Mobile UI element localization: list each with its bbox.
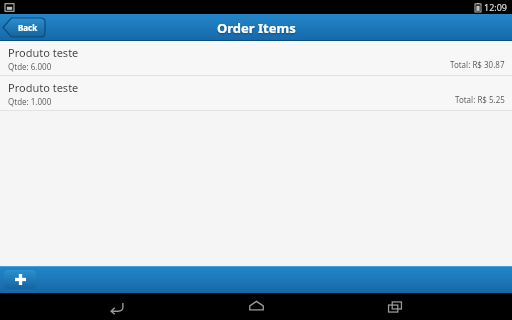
button[interactable]: Add item — [4, 270, 36, 289]
staticText: Qtde: 6.000 — [8, 61, 52, 72]
staticText: 12:09 — [484, 1, 508, 13]
button[interactable]: Home — [234, 293, 278, 320]
staticText: Order Items — [217, 19, 296, 37]
staticText: Qtde: 1.000 — [8, 96, 52, 107]
staticText: Total: R$ 5.25 — [455, 94, 505, 105]
button[interactable]: Produto teste — [0, 41, 512, 76]
staticText: Produto teste — [8, 80, 79, 95]
staticText: Back — [18, 22, 38, 33]
staticText: Total: R$ 30.87 — [450, 59, 505, 70]
button[interactable]: Back — [3, 18, 45, 37]
button[interactable]: Recent apps — [373, 293, 417, 320]
button[interactable]: Produto teste — [0, 76, 512, 111]
staticText: Produto teste — [8, 45, 79, 60]
button[interactable]: Back — [95, 293, 139, 320]
